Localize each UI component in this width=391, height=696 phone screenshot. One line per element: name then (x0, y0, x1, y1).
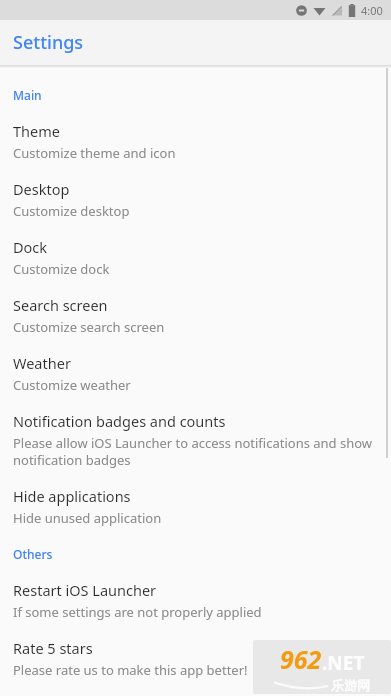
staticText: Hide unused application (13, 509, 162, 527)
staticText: Hide applications (13, 486, 131, 506)
button[interactable]: Rate 5 stars (0, 623, 391, 681)
button[interactable]: Restart iOS Launcher (0, 565, 391, 623)
staticText: 4:00 (361, 3, 383, 18)
staticText: Customize search screen (13, 318, 165, 336)
staticText: If some settings are not properly applie… (13, 603, 262, 621)
staticText: Notification badges and counts (13, 411, 226, 431)
staticText: Please allow iOS Launcher to access noti… (13, 434, 377, 469)
button[interactable]: Search screen (0, 280, 391, 338)
staticText: Dock (13, 237, 48, 257)
staticText: .NET (322, 650, 365, 676)
button[interactable]: Notification badges and counts (0, 396, 391, 471)
staticText: Theme (13, 121, 60, 141)
staticText: Customize theme and icon (13, 144, 176, 162)
staticText: Weather (13, 353, 71, 373)
button[interactable]: Hide applications (0, 471, 391, 529)
staticText: Others (13, 546, 53, 562)
staticText: Customize desktop (13, 202, 130, 220)
staticText: 962 (280, 642, 322, 676)
button[interactable]: Dock (0, 222, 391, 280)
staticText: Restart iOS Launcher (13, 580, 157, 600)
staticText: Main (13, 87, 42, 103)
button[interactable]: Desktop (0, 164, 391, 222)
button[interactable]: Theme (0, 106, 391, 164)
staticText: Settings (13, 30, 84, 55)
staticText: 乐游网 (331, 677, 370, 693)
staticText: Desktop (13, 179, 70, 199)
staticText: Please rate us to make this app better! (13, 661, 248, 679)
button[interactable]: Weather (0, 338, 391, 396)
staticText: Customize dock (13, 260, 110, 278)
staticText: Search screen (13, 295, 108, 315)
staticText: Rate 5 stars (13, 638, 93, 658)
staticText: Customize weather (13, 376, 131, 394)
